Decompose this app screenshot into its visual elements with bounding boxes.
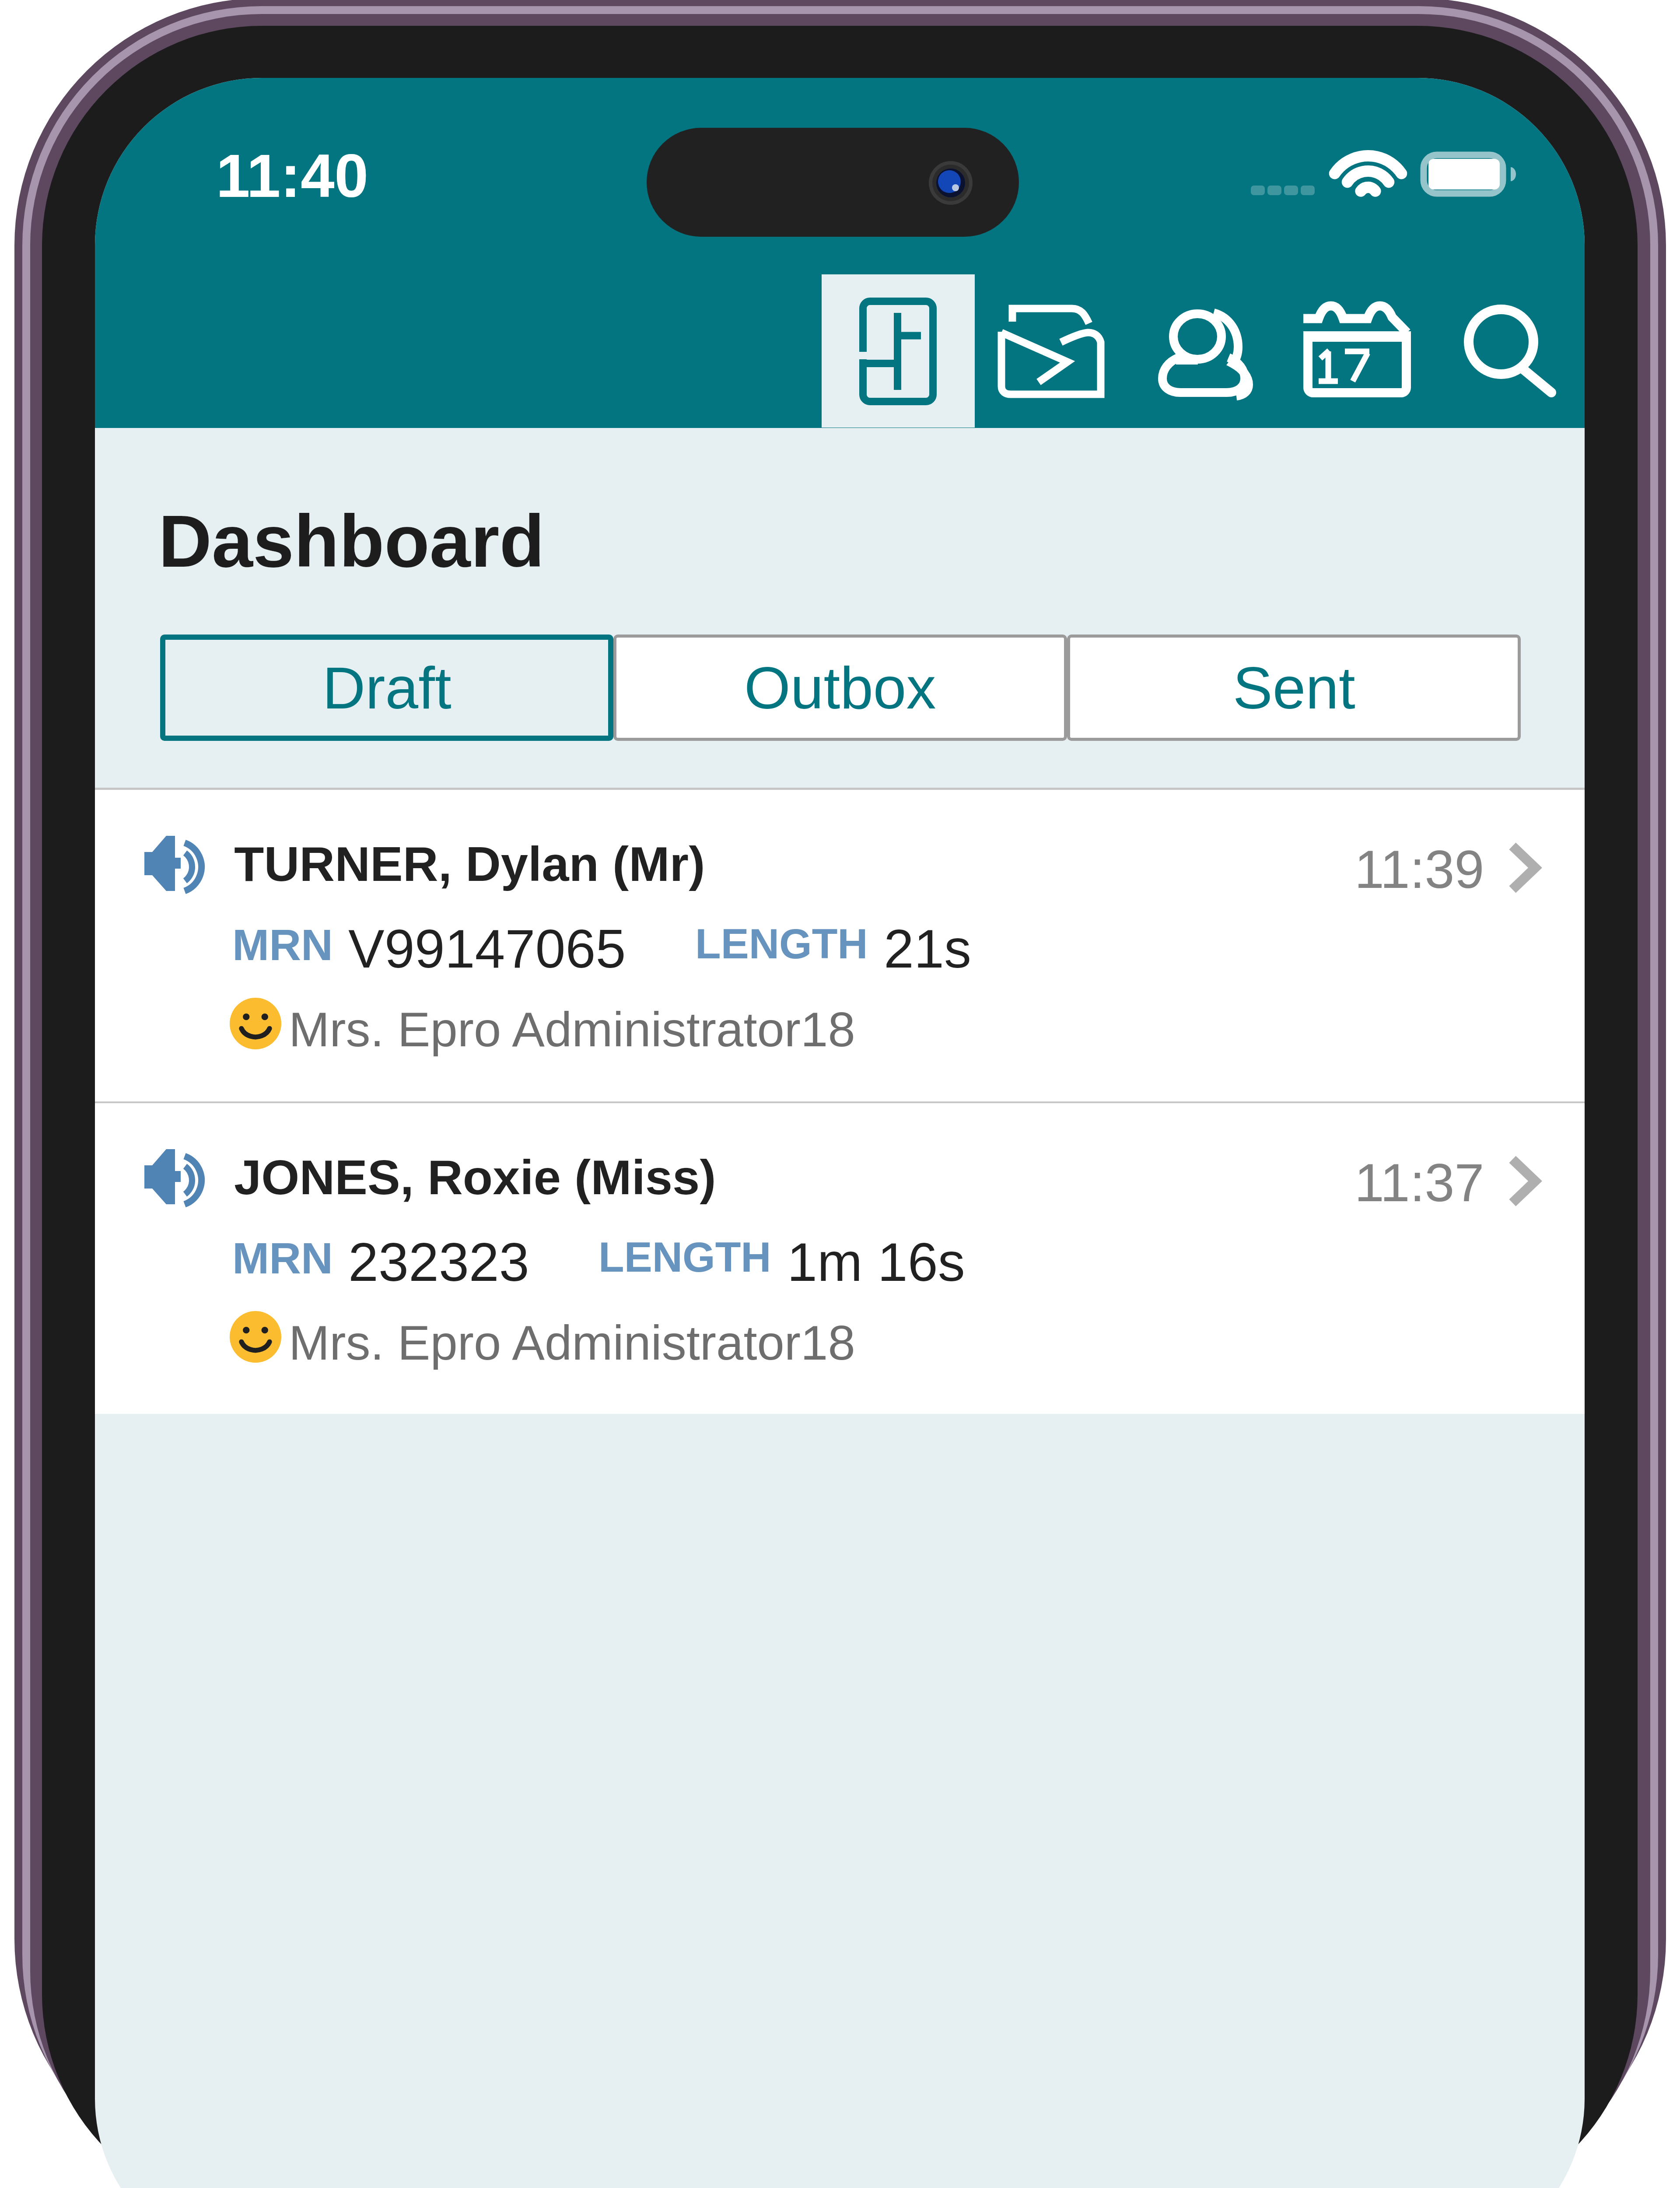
staticText: TURNER, Dylan (Mr) xyxy=(234,837,705,891)
staticText: Mrs. Epro Administrator18 xyxy=(289,1002,855,1057)
button[interactable]: Calendar xyxy=(1281,274,1434,428)
staticText: 11:40 xyxy=(216,142,368,210)
staticText: MRN xyxy=(232,920,333,970)
staticText: 11:39 xyxy=(1354,840,1484,899)
button[interactable]: JONES, Roxie (Miss) xyxy=(95,1103,1585,1415)
staticText: 232323 xyxy=(348,1232,529,1293)
staticText: LENGTH xyxy=(695,920,868,967)
button[interactable]: Outbox xyxy=(975,274,1128,428)
staticText: MRN xyxy=(232,1234,333,1283)
staticText: JONES, Roxie (Miss) xyxy=(234,1150,716,1205)
button[interactable]: Patients xyxy=(1128,274,1281,428)
button[interactable]: Outbox xyxy=(613,635,1067,741)
button[interactable]: Sent xyxy=(1067,635,1521,741)
button[interactable]: TURNER, Dylan (Mr) xyxy=(95,790,1585,1101)
staticText: 1m 16s xyxy=(787,1232,965,1293)
button[interactable]: Draft xyxy=(160,635,613,741)
staticText: Outbox xyxy=(744,655,936,721)
button[interactable]: Search xyxy=(1434,274,1585,428)
button[interactable]: Dashboard xyxy=(822,274,975,428)
staticText: 11:37 xyxy=(1354,1153,1484,1213)
staticText: Dashboard xyxy=(158,500,545,582)
staticText: Sent xyxy=(1233,655,1355,721)
staticText: 21s xyxy=(884,919,971,979)
staticText: Mrs. Epro Administrator18 xyxy=(289,1315,855,1370)
staticText: V99147065 xyxy=(348,919,626,979)
staticText: LENGTH xyxy=(598,1234,771,1280)
staticText: Draft xyxy=(322,655,451,721)
